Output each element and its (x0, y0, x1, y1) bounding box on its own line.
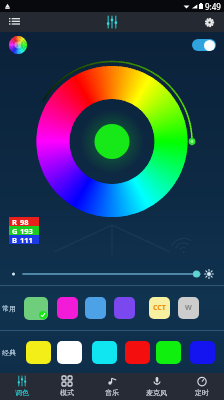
button[interactable]: Colour preset (178, 297, 199, 319)
staticText: W (185, 303, 192, 313)
button[interactable]: 调色 (0, 373, 44, 400)
staticText: 98 (20, 217, 29, 226)
button[interactable]: Brightness (0, 263, 224, 285)
staticText: 9:49 (205, 1, 221, 12)
button[interactable]: 麦克风 (134, 373, 179, 400)
button[interactable]: Colour preset (190, 341, 215, 364)
button[interactable]: Colour tuning (102, 12, 122, 32)
staticText: 定时 (195, 388, 209, 397)
staticText: 音乐 (105, 388, 119, 397)
button[interactable]: Power (192, 39, 216, 51)
staticText: G (12, 226, 18, 235)
button[interactable]: Colour preset (85, 297, 106, 319)
button[interactable]: Colour preset (26, 341, 51, 364)
staticText: CCT (153, 303, 166, 313)
button[interactable]: Colour preset (125, 341, 150, 364)
button[interactable]: Colour preset (156, 341, 181, 364)
button[interactable]: Colour preset (114, 297, 135, 319)
button[interactable]: Colour wheel (0, 58, 224, 263)
staticText: R (12, 217, 17, 226)
staticText: 麦克风 (146, 388, 167, 397)
button[interactable]: Colour preset (149, 297, 170, 319)
button[interactable]: Colour preset (57, 341, 82, 364)
button[interactable]: Colour preset (24, 297, 48, 320)
staticText: 111 (20, 235, 33, 244)
staticText: 常用 (2, 304, 16, 313)
button[interactable]: 定时 (179, 373, 224, 400)
button[interactable]: Settings (200, 13, 218, 31)
button[interactable]: 模式 (44, 373, 89, 400)
button[interactable]: 音乐 (89, 373, 134, 400)
staticText: 经典 (2, 348, 16, 357)
button[interactable]: Colour preset (92, 341, 117, 364)
staticText: B (12, 235, 17, 244)
staticText: 调色 (15, 388, 29, 397)
button[interactable]: Colour picker (9, 36, 27, 54)
staticText: 模式 (60, 388, 74, 397)
staticText: 193 (20, 226, 33, 235)
button[interactable]: Colour preset (57, 297, 78, 319)
button[interactable]: Menu (5, 13, 23, 31)
